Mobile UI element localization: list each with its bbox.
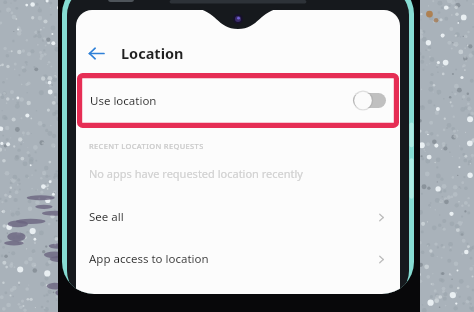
button[interactable]: Back bbox=[80, 37, 112, 69]
staticText: App access to location bbox=[89, 251, 376, 267]
staticText: No apps have requested location recently bbox=[89, 166, 303, 181]
button[interactable]: App access to location bbox=[76, 245, 400, 273]
staticText: RECENT LOCATION REQUESTS bbox=[89, 141, 204, 151]
button[interactable]: Use location bbox=[77, 73, 399, 128]
staticText: Use location bbox=[90, 93, 353, 109]
staticText: Location bbox=[121, 43, 184, 63]
button[interactable]: See all bbox=[76, 203, 400, 231]
staticText: See all bbox=[89, 209, 376, 225]
